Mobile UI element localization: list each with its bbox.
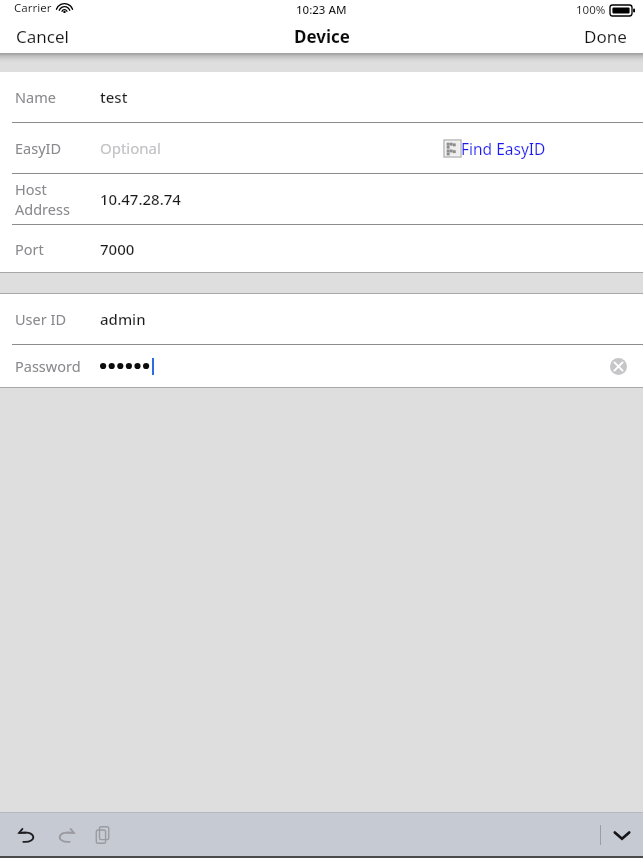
staticText: Port (15, 239, 44, 259)
button[interactable]: Hide keyboard (601, 815, 643, 855)
staticText: 7000 (100, 239, 135, 259)
staticText: admin (100, 309, 146, 329)
staticText: Cancel (16, 25, 69, 48)
button[interactable]: Clear password (610, 358, 627, 375)
staticText: Carrier (14, 0, 52, 16)
staticText: Host Address (15, 179, 100, 219)
button[interactable]: Cancel (0, 20, 85, 53)
staticText: 10:23 AM (296, 2, 347, 18)
button[interactable]: Redo (46, 815, 84, 855)
staticText: Optional (100, 138, 161, 158)
button[interactable]: Done (568, 20, 643, 53)
staticText: test (100, 87, 128, 107)
staticText: Done (584, 25, 627, 48)
button[interactable]: Name (0, 72, 643, 122)
staticText: User ID (15, 309, 66, 329)
staticText: Device (294, 25, 350, 48)
button[interactable]: Paste (84, 815, 122, 855)
staticText: 10.47.28.74 (100, 189, 181, 209)
staticText: Password (15, 356, 81, 376)
button[interactable]: Password (0, 345, 643, 387)
button[interactable]: EasyID (0, 123, 643, 173)
staticText: Name (15, 87, 56, 107)
staticText: EasyID (15, 138, 62, 158)
staticText: Find EasyID (461, 138, 546, 159)
button[interactable]: Port (0, 225, 643, 272)
staticText: 100% (576, 2, 606, 18)
button[interactable]: Find EasyID (444, 138, 643, 159)
button[interactable]: Undo (8, 815, 46, 855)
button[interactable]: User ID (0, 294, 643, 344)
button[interactable]: Host Address (0, 174, 643, 224)
